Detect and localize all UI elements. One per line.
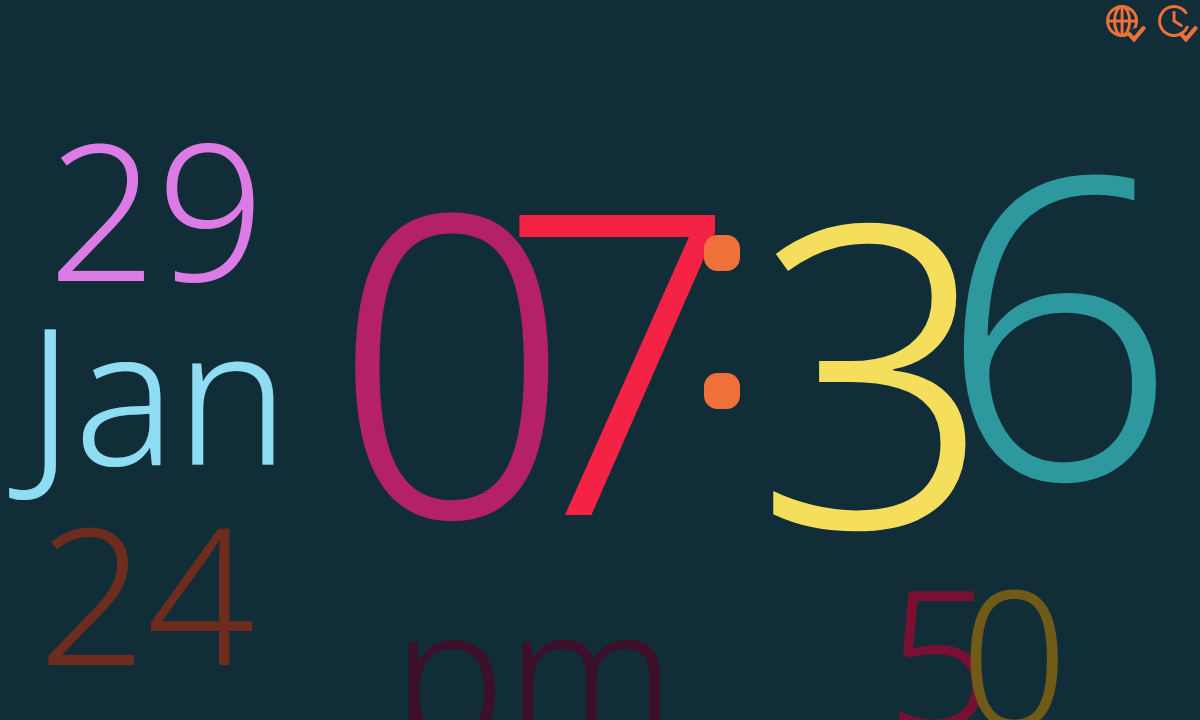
button[interactable]: World clock [1104,3,1146,45]
button[interactable]: Alarm [1156,3,1198,45]
staticText: 5 [886,524,995,720]
staticText: 3 [754,78,994,650]
staticText: Jan [26,262,289,521]
staticText: 29 [48,78,265,337]
staticText: 0 [960,524,1069,720]
staticText: 7 [498,66,738,638]
button[interactable]: 29 [0,0,1200,720]
staticText: 0 [332,68,572,640]
staticText: pm [392,540,676,720]
staticText: 6 [938,30,1178,602]
staticText: 24 [38,462,255,720]
